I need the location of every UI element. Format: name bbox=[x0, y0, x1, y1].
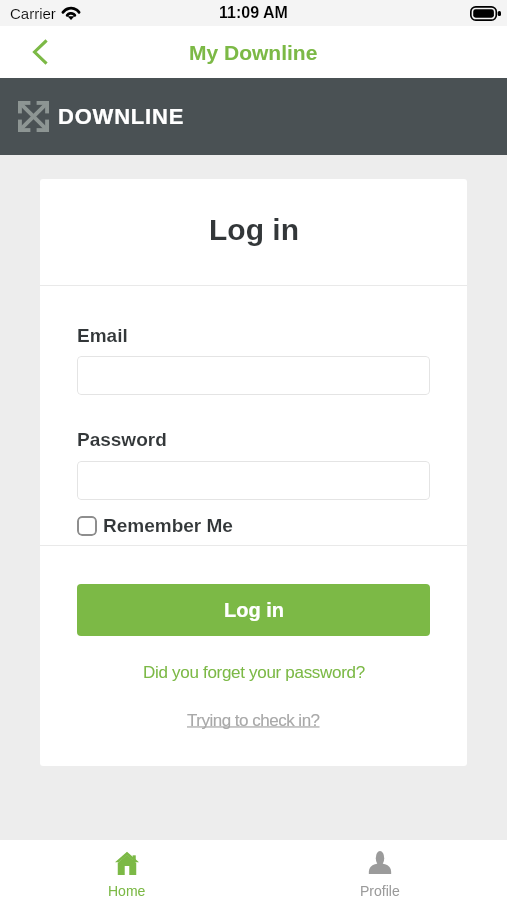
staticText: DOWNLINE bbox=[58, 104, 185, 129]
button[interactable]: Back bbox=[18, 30, 62, 74]
button[interactable]: Log in bbox=[77, 584, 430, 636]
button[interactable]: Trying to check in? bbox=[187, 711, 320, 730]
button[interactable] bbox=[77, 356, 430, 395]
button[interactable] bbox=[77, 461, 430, 500]
staticText: My Downline bbox=[189, 41, 318, 64]
staticText: Did you forget your password? bbox=[143, 663, 365, 682]
staticText: Email bbox=[77, 325, 128, 346]
staticText: Remember Me bbox=[103, 515, 233, 536]
staticText: Log in bbox=[224, 599, 284, 621]
staticText: 11:09 AM bbox=[219, 4, 288, 22]
staticText: Profile bbox=[360, 883, 400, 899]
staticText: Carrier bbox=[10, 5, 56, 22]
button[interactable]: Profile bbox=[253, 840, 507, 900]
button[interactable]: Home bbox=[0, 840, 253, 900]
staticText: Trying to check in? bbox=[187, 711, 320, 730]
staticText: Home bbox=[108, 883, 146, 899]
button[interactable]: Remember Me bbox=[77, 515, 233, 536]
staticText: Log in bbox=[209, 213, 299, 247]
button[interactable]: Did you forget your password? bbox=[143, 663, 365, 682]
staticText: Password bbox=[77, 429, 167, 450]
